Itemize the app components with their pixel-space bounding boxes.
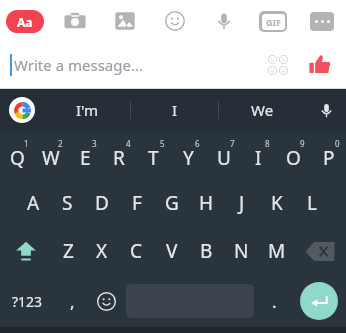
button[interactable]: Backspace (294, 227, 346, 275)
staticText: 4 (126, 138, 131, 149)
staticText: , (70, 290, 75, 313)
button[interactable]: D (84, 179, 119, 227)
button[interactable]: N (224, 227, 259, 275)
staticText: L (307, 190, 317, 216)
button[interactable]: W (34, 131, 68, 179)
staticText: 7 (230, 138, 235, 149)
button[interactable]: V (154, 227, 189, 275)
staticText: X (96, 238, 108, 264)
staticText: T (148, 145, 159, 171)
button[interactable]: More (297, 0, 346, 42)
button[interactable]: H (189, 179, 224, 227)
button[interactable]: R (102, 131, 136, 179)
button[interactable]: Camera (50, 0, 100, 42)
button[interactable]: Voice (199, 0, 248, 42)
staticText: N (234, 238, 249, 264)
button[interactable]: Emoji (89, 275, 123, 327)
staticText: I (255, 145, 262, 171)
staticText: We (251, 100, 274, 120)
button[interactable]: J (224, 179, 259, 227)
button[interactable]: Stickers (258, 45, 298, 85)
staticText: J (239, 190, 245, 216)
button[interactable]: C (119, 227, 154, 275)
button[interactable]: G (154, 179, 189, 227)
button[interactable]: Voice input (306, 89, 346, 131)
staticText: 8 (265, 138, 270, 149)
staticText: S (62, 190, 73, 216)
button[interactable]: Y (171, 131, 206, 179)
staticText: Q (10, 145, 25, 171)
button[interactable]: . (257, 275, 291, 327)
button[interactable]: O (276, 131, 311, 179)
staticText: M (268, 238, 286, 264)
staticText: V (166, 238, 178, 264)
button[interactable]: M (259, 227, 294, 275)
staticText: 1 (24, 138, 29, 149)
staticText: . (272, 290, 277, 313)
staticText: B (200, 238, 213, 264)
button[interactable]: Photos (100, 0, 150, 42)
staticText: 9 (300, 138, 305, 149)
button[interactable]: Emoji (150, 0, 199, 42)
button[interactable]: I (241, 131, 276, 179)
staticText: 2 (58, 138, 63, 149)
staticText: 3 (92, 138, 97, 149)
staticText: 5 (160, 138, 165, 149)
button[interactable]: F (119, 179, 154, 227)
staticText: I (172, 100, 178, 120)
button[interactable]: We (219, 89, 306, 131)
staticText: E (80, 145, 91, 171)
button[interactable]: I (131, 89, 218, 131)
staticText: H (199, 190, 214, 216)
button[interactable]: GIF (248, 0, 297, 42)
button[interactable]: K (259, 179, 294, 227)
staticText: A (27, 190, 40, 216)
staticText: 0 (335, 138, 340, 149)
staticText: Y (183, 145, 194, 171)
staticText: Z (63, 238, 74, 264)
staticText: 6 (195, 138, 200, 149)
staticText: ?123 (12, 292, 43, 311)
button[interactable]: , (55, 275, 89, 327)
staticText: R (113, 145, 125, 171)
staticText: G (165, 190, 179, 216)
button[interactable]: U (206, 131, 241, 179)
button[interactable]: Write a message… (14, 42, 258, 88)
button[interactable]: B (189, 227, 224, 275)
button[interactable]: Google (0, 89, 44, 131)
staticText: P (323, 145, 335, 171)
button[interactable]: I'm (44, 89, 130, 131)
button[interactable]: A (16, 179, 50, 227)
staticText: D (95, 190, 109, 216)
button[interactable]: Q (0, 131, 34, 179)
button[interactable]: E (68, 131, 102, 179)
staticText: Write a message… (14, 55, 143, 75)
staticText: I'm (76, 100, 99, 120)
staticText: C (130, 238, 143, 264)
button[interactable]: ?123 (0, 275, 55, 327)
staticText: F (132, 190, 142, 216)
staticText: U (217, 145, 231, 171)
button[interactable]: Aa (0, 0, 50, 42)
button[interactable]: L (294, 179, 329, 227)
button[interactable]: P (311, 131, 346, 179)
button[interactable]: S (50, 179, 84, 227)
button[interactable]: T (136, 131, 171, 179)
staticText: W (42, 145, 60, 171)
staticText: K (271, 190, 283, 216)
staticText: O (286, 145, 301, 171)
button[interactable]: Enter (291, 275, 346, 327)
button[interactable]: Z (51, 227, 85, 275)
button[interactable]: X (85, 227, 119, 275)
button[interactable]: Send like (298, 43, 342, 87)
staticText: Aa (17, 14, 33, 30)
button[interactable]: Shift (0, 227, 51, 275)
staticText: GIF (266, 16, 281, 28)
